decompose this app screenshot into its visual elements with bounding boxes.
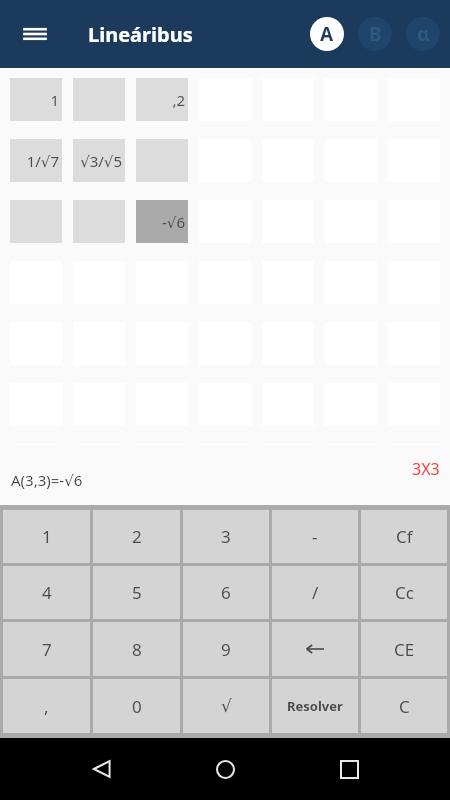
button[interactable]: 1/√7	[10, 139, 62, 182]
button[interactable]: 4	[3, 566, 90, 619]
button[interactable]: Matrix B	[358, 17, 392, 51]
button[interactable]: Cc	[361, 566, 447, 619]
staticText: 8	[132, 638, 142, 661]
button[interactable]: Recents	[327, 747, 371, 791]
button[interactable]: Matrix α	[406, 17, 440, 51]
button[interactable]: Cf	[361, 510, 447, 563]
staticText: 6	[221, 581, 231, 604]
staticText: α	[417, 21, 430, 47]
button[interactable]: ,	[3, 679, 90, 733]
staticText: A	[320, 21, 334, 47]
staticText: 5	[132, 581, 142, 604]
staticText: √	[221, 696, 232, 716]
button[interactable]: -√6	[136, 200, 188, 243]
button[interactable]: 1	[10, 78, 62, 121]
button[interactable]: C	[361, 679, 447, 733]
staticText: 2	[132, 525, 142, 548]
staticText: C	[399, 695, 410, 718]
staticText: Cf	[396, 525, 413, 548]
staticText: 3	[221, 525, 231, 548]
button[interactable]: 0	[93, 679, 180, 733]
button[interactable]: 5	[93, 566, 180, 619]
button[interactable]: Menu	[14, 13, 56, 55]
staticText: 1	[42, 525, 52, 548]
staticText: Cc	[395, 581, 414, 604]
staticText: ,2	[172, 90, 185, 110]
button[interactable]: Resolver	[272, 679, 358, 733]
staticText: ,	[44, 695, 49, 718]
staticText: Lineáribus	[88, 21, 193, 48]
button[interactable]: Back	[80, 747, 124, 791]
button[interactable]: 7	[3, 622, 90, 676]
staticText: -√6	[162, 212, 185, 232]
button[interactable]: 2	[93, 510, 180, 563]
staticText: -	[312, 525, 318, 548]
button[interactable]: Home	[203, 747, 247, 791]
staticText: 1/√7	[26, 151, 59, 171]
button[interactable]: Matrix A	[310, 17, 344, 51]
button[interactable]: -	[272, 510, 358, 563]
staticText: 4	[42, 581, 52, 604]
button[interactable]: Backspace	[272, 622, 358, 676]
staticText: A(3,3)=-√6	[11, 470, 83, 490]
button[interactable]: 3	[183, 510, 269, 563]
button[interactable]: 1	[3, 510, 90, 563]
button[interactable]: √3/√5	[73, 139, 125, 182]
button[interactable]: √	[183, 679, 269, 733]
staticText: 7	[42, 638, 52, 661]
button[interactable]: ,2	[136, 78, 188, 121]
staticText: Resolver	[287, 697, 343, 715]
button[interactable]: 6	[183, 566, 269, 619]
other: Backspace	[304, 638, 326, 660]
staticText: /	[312, 581, 319, 604]
button[interactable]: /	[272, 566, 358, 619]
button[interactable]: 9	[183, 622, 269, 676]
button[interactable]: CE	[361, 622, 447, 676]
button[interactable]: 8	[93, 622, 180, 676]
